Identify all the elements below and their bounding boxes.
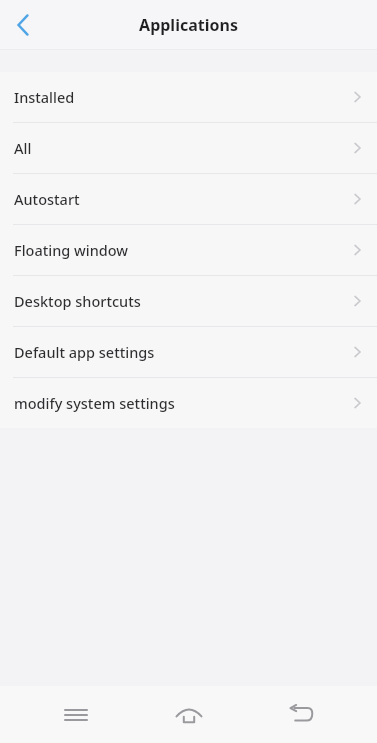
staticText: modify system settings	[14, 393, 175, 413]
staticText: Applications	[139, 14, 238, 36]
button[interactable]: Recent apps	[40, 686, 112, 743]
staticText: Installed	[14, 87, 75, 107]
staticText: Desktop shortcuts	[14, 291, 141, 311]
button[interactable]: Floating window	[0, 225, 377, 275]
button[interactable]: Default app settings	[0, 327, 377, 377]
button[interactable]: Back	[265, 686, 337, 743]
button[interactable]: Desktop shortcuts	[0, 276, 377, 326]
button[interactable]: All	[0, 123, 377, 173]
staticText: Autostart	[14, 189, 80, 209]
staticText: All	[14, 138, 32, 158]
staticText: Default app settings	[14, 342, 155, 362]
button[interactable]: Autostart	[0, 174, 377, 224]
button[interactable]: modify system settings	[0, 378, 377, 428]
button[interactable]: Back	[0, 0, 46, 50]
staticText: Floating window	[14, 240, 129, 260]
button[interactable]: Home	[153, 686, 225, 743]
button[interactable]: Installed	[0, 72, 377, 122]
